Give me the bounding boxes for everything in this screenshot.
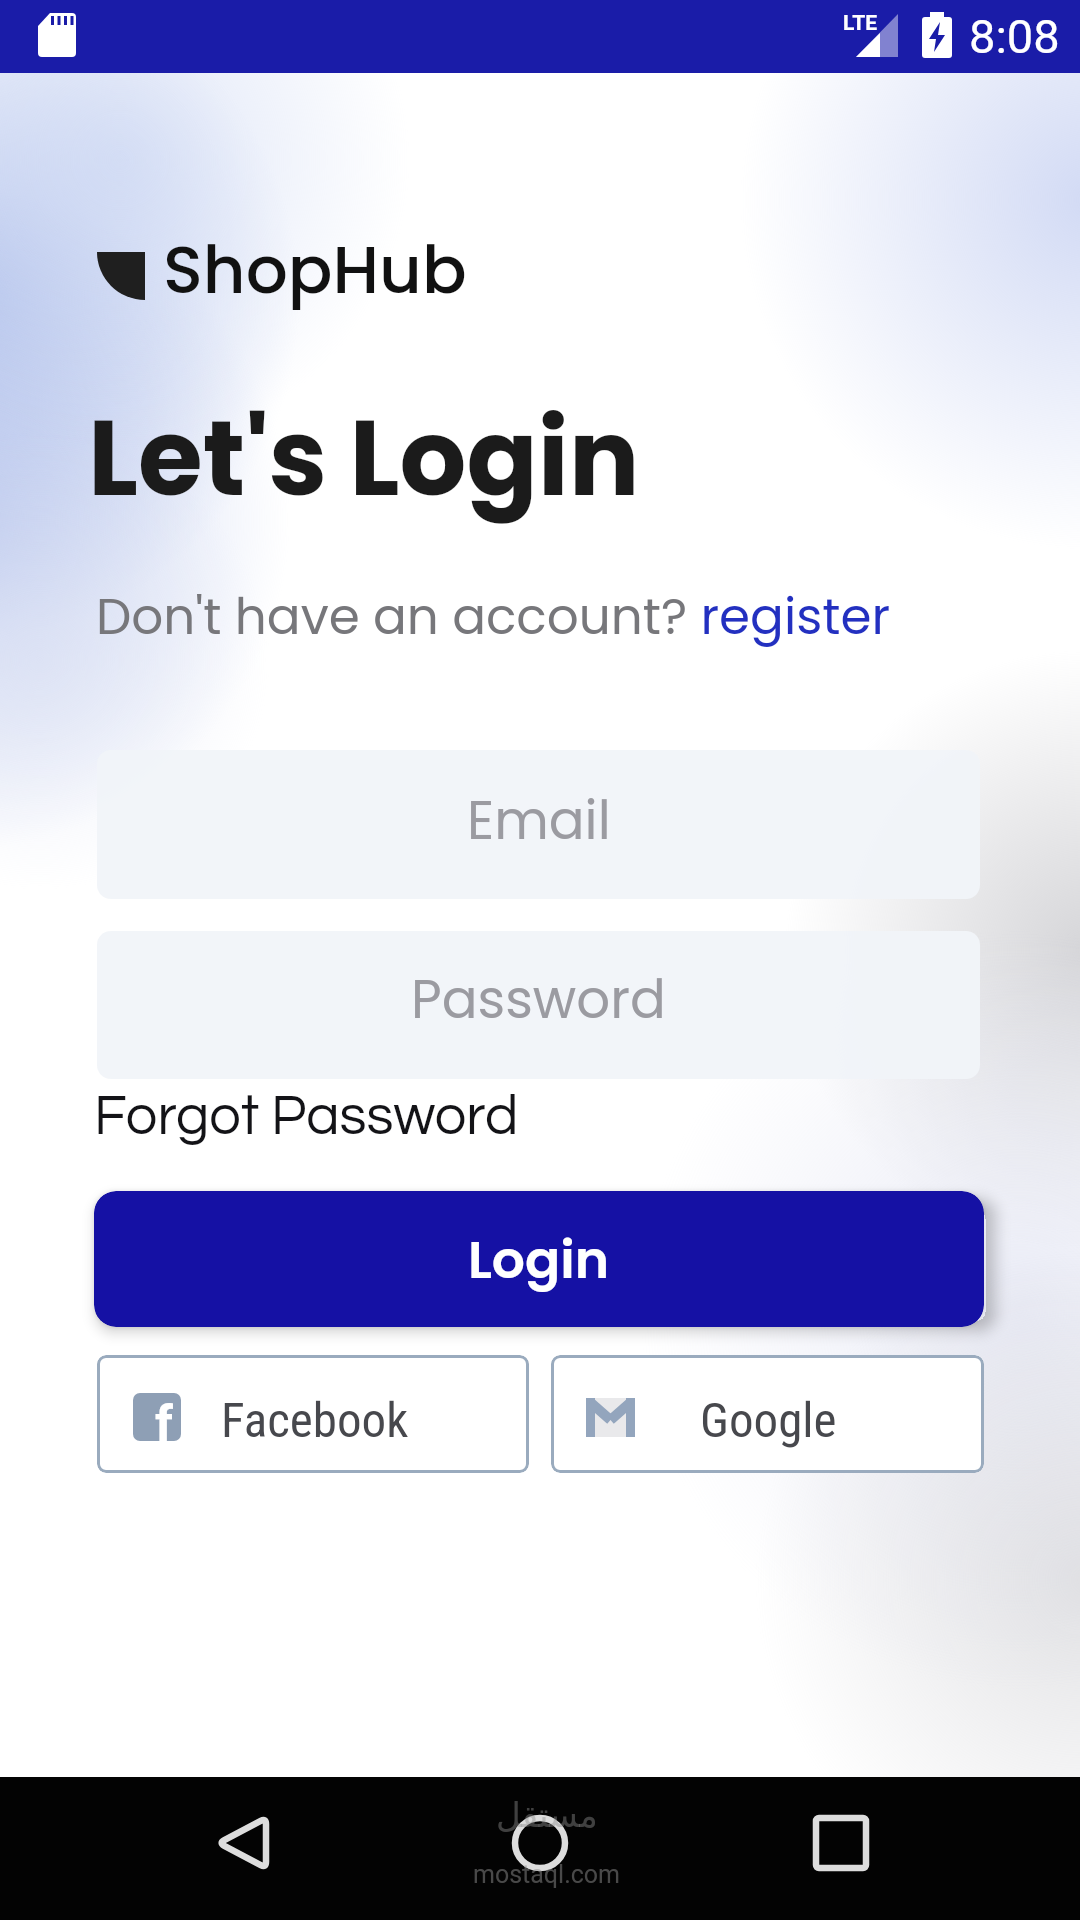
staticText: f (155, 1395, 173, 1441)
staticText: 8:08 (969, 9, 1060, 64)
staticText: مستقل (496, 1795, 598, 1835)
staticText: Facebook (221, 1392, 409, 1449)
staticText: Email (467, 783, 611, 857)
staticText: Forgot Password (94, 1088, 519, 1146)
staticText: ShopHub (163, 224, 467, 316)
staticText: LTE (843, 11, 878, 36)
staticText: Password (411, 962, 666, 1036)
staticText: mostaql.com (473, 1860, 621, 1889)
staticText: Login (468, 1223, 610, 1296)
staticText: Google (700, 1392, 837, 1449)
staticText: Let's Login (88, 385, 640, 532)
staticText: Don't have an account? register (96, 582, 891, 652)
